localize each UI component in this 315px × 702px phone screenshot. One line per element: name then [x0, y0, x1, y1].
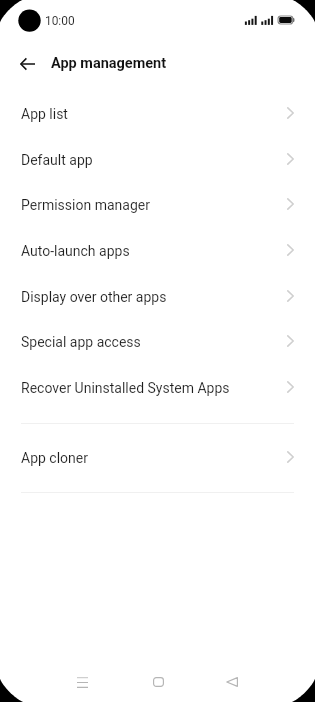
- staticText: App list: [21, 106, 68, 122]
- staticText: Default app: [21, 152, 93, 168]
- staticText: App cloner: [21, 450, 88, 466]
- staticText: Display over other apps: [21, 289, 167, 305]
- button[interactable]: Display over other apps: [0, 273, 315, 319]
- button[interactable]: Permission manager: [0, 181, 315, 227]
- staticText: Auto-launch apps: [21, 243, 130, 259]
- staticText: Special app access: [21, 334, 141, 350]
- staticText: 10:00: [45, 14, 75, 28]
- button[interactable]: Special app access: [0, 318, 315, 364]
- button[interactable]: Back: [212, 662, 252, 702]
- button[interactable]: App list: [0, 90, 315, 136]
- button[interactable]: Auto-launch apps: [0, 227, 315, 273]
- button[interactable]: Recent apps: [62, 662, 102, 702]
- staticText: Recover Uninstalled System Apps: [21, 380, 230, 396]
- staticText: App management: [51, 55, 167, 72]
- staticText: Permission manager: [21, 197, 150, 213]
- button[interactable]: Home: [138, 662, 178, 702]
- button[interactable]: App cloner: [0, 434, 315, 480]
- button[interactable]: Recover Uninstalled System Apps: [0, 364, 315, 410]
- button[interactable]: Default app: [0, 136, 315, 182]
- button[interactable]: Back: [13, 49, 42, 78]
